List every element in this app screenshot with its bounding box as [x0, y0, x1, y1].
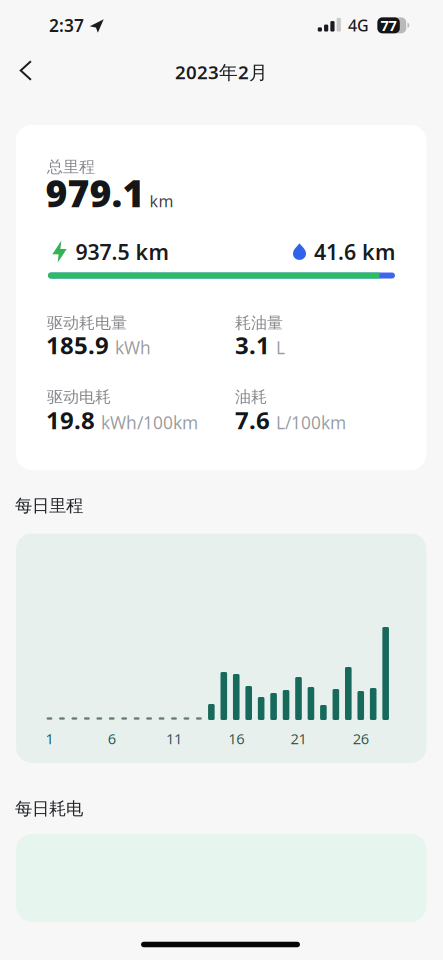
button[interactable]: Back [11, 51, 41, 90]
staticText: 驱动耗电量 [47, 313, 127, 333]
staticText: 总里程 [47, 157, 95, 177]
staticText: 77 [381, 16, 397, 35]
staticText: 21 [290, 729, 306, 748]
staticText: kWh/100km [101, 411, 198, 434]
staticText: 26 [353, 729, 369, 748]
staticText: 2:37 [49, 14, 84, 37]
staticText: L [276, 336, 285, 359]
staticText: 2023年2月 [175, 60, 268, 84]
staticText: km [149, 190, 173, 212]
staticText: 16 [228, 729, 244, 748]
staticText: 937.5 km [75, 237, 168, 266]
staticText: 1 [45, 729, 53, 748]
staticText: 驱动电耗 [47, 387, 111, 407]
staticText: 11 [166, 729, 182, 748]
staticText: 每日里程 [15, 495, 83, 516]
staticText: 979.1 [45, 168, 144, 218]
staticText: 185.9 [46, 329, 109, 361]
staticText: L/100km [276, 411, 346, 434]
staticText: 41.6 km [314, 237, 395, 266]
staticText: 4G [348, 15, 369, 36]
staticText: 油耗 [235, 387, 267, 407]
staticText: 耗油量 [235, 313, 283, 333]
staticText: kWh [115, 336, 151, 359]
staticText: 6 [108, 729, 116, 748]
staticText: 3.1 [235, 329, 270, 361]
staticText: 19.8 [46, 404, 95, 436]
staticText: 7.6 [235, 404, 270, 436]
staticText: 每日耗电 [15, 798, 83, 819]
